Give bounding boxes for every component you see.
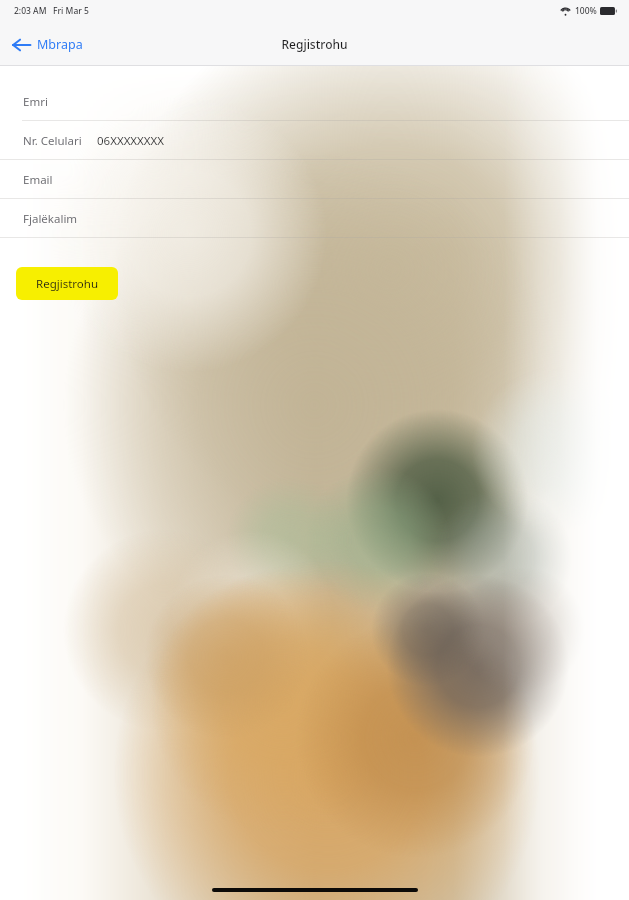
other: Back bbox=[12, 37, 31, 53]
button[interactable]: Email bbox=[0, 160, 629, 199]
button[interactable]: Nr. Celulari bbox=[0, 121, 629, 160]
staticText: Fri Mar 5 bbox=[53, 5, 89, 17]
staticText: 06XXXXXXXX bbox=[97, 133, 165, 149]
staticText: Mbrapa bbox=[37, 36, 83, 53]
button[interactable]: Fjalëkalim bbox=[0, 199, 629, 238]
button[interactable]: Regjistrohu bbox=[16, 267, 118, 300]
button[interactable]: Back bbox=[0, 30, 93, 59]
staticText: 100% bbox=[575, 5, 597, 17]
staticText: Fjalëkalim bbox=[23, 211, 78, 227]
staticText: Emri bbox=[23, 94, 48, 110]
staticText: Regjistrohu bbox=[281, 36, 348, 52]
staticText: 2:03 AM bbox=[14, 5, 47, 17]
staticText: Regjistrohu bbox=[36, 276, 98, 292]
staticText: Nr. Celulari bbox=[23, 133, 82, 149]
button[interactable]: Emri bbox=[0, 82, 629, 121]
staticText: Email bbox=[23, 172, 53, 188]
